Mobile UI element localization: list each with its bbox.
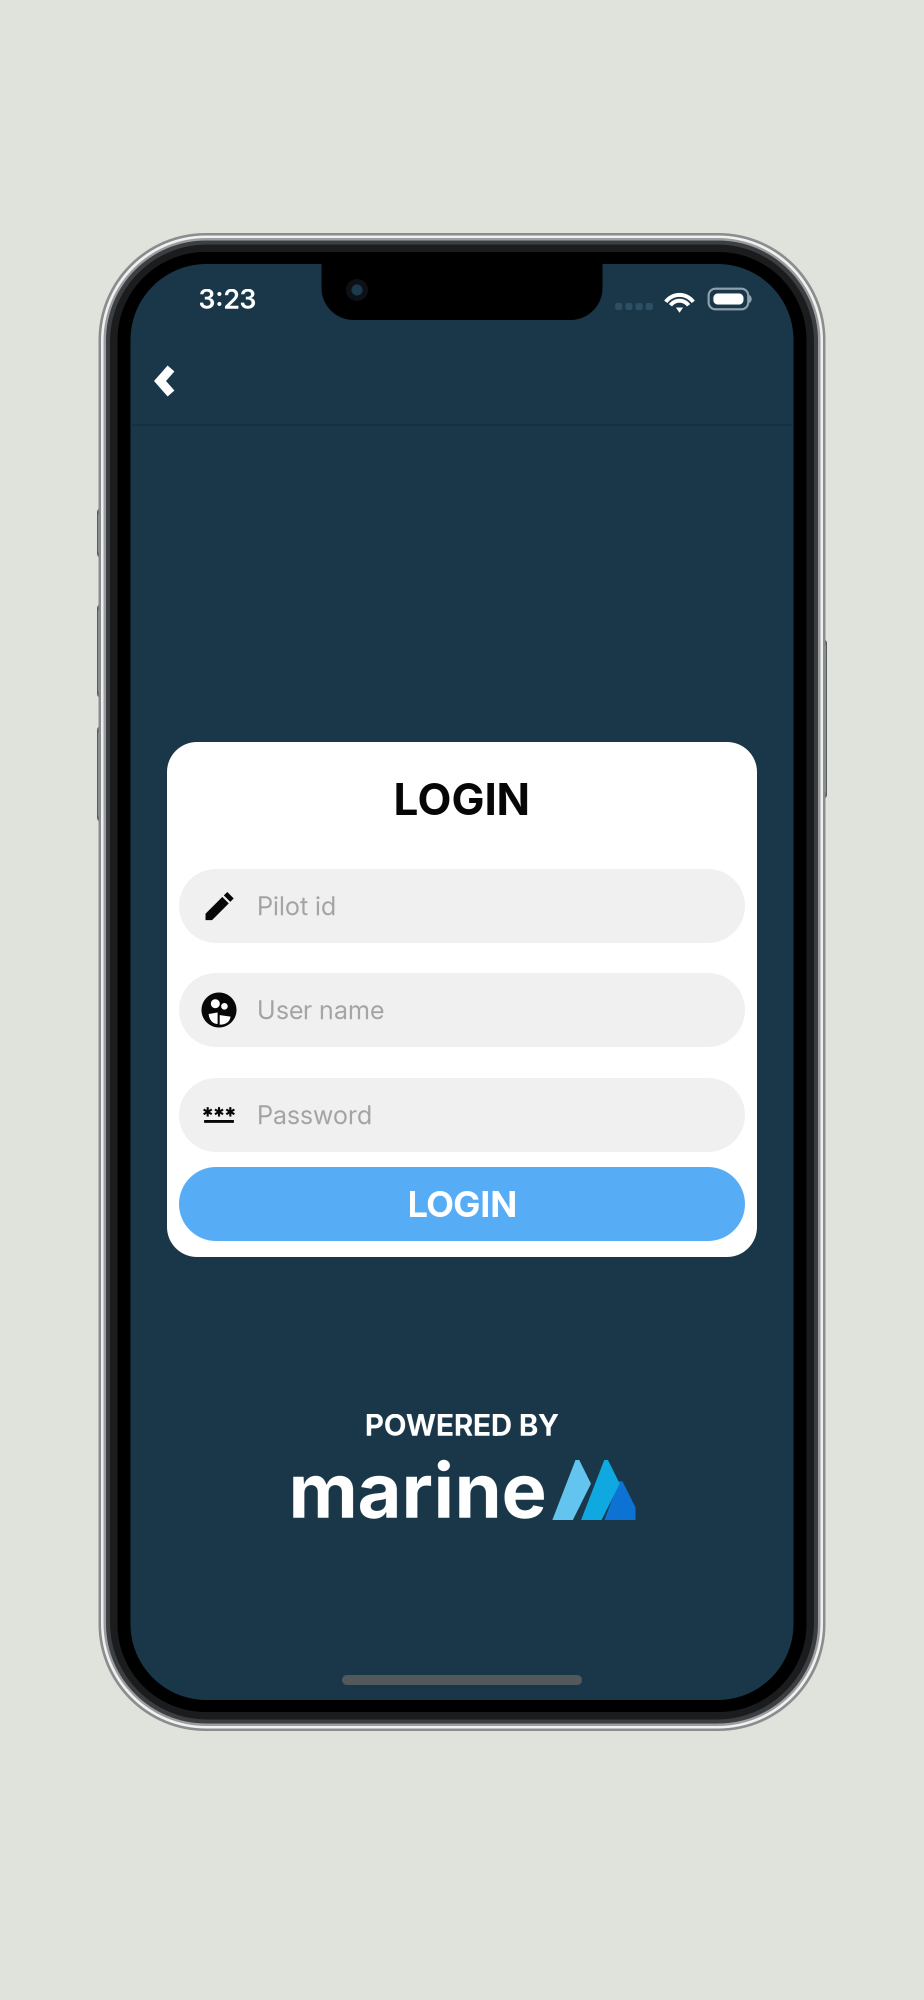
button[interactable]: Back <box>130 320 229 424</box>
staticText: LOGIN <box>393 772 530 826</box>
staticText: Pilot id <box>257 891 336 921</box>
staticText: Password <box>257 1100 372 1130</box>
button[interactable]: LOGIN <box>179 1167 745 1241</box>
staticText: marine <box>288 1444 546 1536</box>
staticText: LOGIN <box>407 1182 516 1226</box>
staticText: 3:23 <box>198 283 256 315</box>
staticText: POWERED BY <box>365 1407 559 1443</box>
staticText: User name <box>257 995 384 1025</box>
